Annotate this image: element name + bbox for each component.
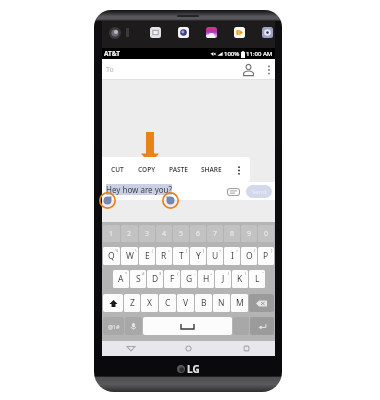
button[interactable]: PASTE [169, 165, 188, 174]
staticText: 3 [145, 229, 150, 239]
button[interactable]: 9 [241, 225, 257, 242]
staticText: | [151, 248, 154, 253]
button[interactable]: 0 [258, 225, 274, 242]
staticText: C [165, 297, 171, 309]
staticText: E [145, 250, 150, 262]
staticText: 8 [230, 229, 235, 239]
staticText: $ [159, 271, 162, 276]
button[interactable]: Camera [178, 27, 189, 38]
button[interactable]: Q [103, 247, 120, 265]
button[interactable]: 2 [121, 225, 138, 242]
button[interactable]: 8 [224, 225, 240, 242]
staticText: 2 [127, 229, 132, 239]
button[interactable]: I [224, 247, 240, 265]
staticText: > [236, 248, 239, 253]
staticText: U [212, 250, 219, 262]
staticText: ] [203, 248, 205, 253]
button[interactable]: N [213, 294, 230, 312]
button[interactable]: P [258, 247, 274, 265]
button[interactable]: F [164, 270, 180, 288]
button[interactable]: Gallery [150, 27, 161, 38]
staticText: PASTE [169, 165, 188, 174]
staticText: SHARE [201, 165, 222, 174]
button[interactable]: CUT [111, 165, 124, 174]
button[interactable]: More options [264, 63, 273, 77]
staticText: N [218, 297, 225, 309]
staticText: ( [228, 271, 230, 276]
button[interactable]: U [207, 247, 223, 265]
button[interactable]: L [249, 270, 265, 288]
button[interactable]: Space [143, 317, 232, 335]
staticText: W [126, 250, 134, 262]
button[interactable]: S [130, 270, 146, 288]
staticText: Send [252, 188, 267, 196]
button[interactable]: H [198, 270, 214, 288]
staticText: LG [187, 362, 200, 376]
button[interactable]: Photos [206, 27, 217, 38]
button[interactable]: E [139, 247, 155, 265]
staticText: O [246, 250, 253, 262]
button[interactable]: More [235, 162, 243, 178]
staticText: ) [245, 271, 247, 276]
staticText: < [219, 248, 222, 253]
staticText: " [262, 271, 264, 276]
staticText: * [125, 271, 128, 276]
button[interactable]: Back [102, 341, 159, 356]
staticText: F [170, 273, 175, 285]
staticText: 7 [213, 229, 218, 239]
staticText: B [201, 297, 207, 309]
staticText: Hey how are you? [106, 184, 172, 195]
button[interactable]: Shift [103, 294, 123, 312]
staticText: 5 [179, 229, 184, 239]
button[interactable]: Z [124, 294, 140, 312]
staticText: R [161, 250, 167, 262]
button[interactable]: X [141, 294, 158, 312]
staticText: 11:00 AM [246, 50, 273, 58]
button[interactable]: W [121, 247, 138, 265]
staticText: H [203, 273, 210, 285]
button[interactable]: Home [159, 341, 217, 356]
button[interactable]: To [102, 59, 275, 80]
button[interactable]: SHARE [201, 165, 222, 174]
button[interactable]: 6 [190, 225, 206, 242]
button[interactable]: J [215, 270, 231, 288]
button[interactable]: G [181, 270, 197, 288]
button[interactable]: T [173, 247, 189, 265]
button[interactable]: Voice input [125, 317, 142, 335]
button[interactable]: R [156, 247, 172, 265]
button[interactable]: 4 [156, 225, 172, 242]
staticText: } [271, 248, 273, 253]
button[interactable]: Enter [250, 317, 274, 335]
staticText: P [263, 250, 269, 262]
button[interactable]: Y [190, 247, 206, 265]
button[interactable]: 1 [103, 225, 120, 242]
button[interactable]: 5 [173, 225, 189, 242]
button[interactable]: @1# [103, 317, 124, 335]
button[interactable]: Contacts [241, 63, 255, 77]
button[interactable]: 7 [207, 225, 223, 242]
staticText: 100% [224, 50, 240, 58]
button[interactable]: Recents [217, 341, 275, 356]
button[interactable]: Media [234, 27, 245, 38]
button[interactable]: C [159, 294, 176, 312]
button[interactable]: O [241, 247, 257, 265]
button[interactable]: K [232, 270, 248, 288]
button[interactable]: V [177, 294, 194, 312]
staticText: K [237, 273, 243, 285]
staticText: M [236, 297, 244, 309]
staticText: COPY [138, 165, 156, 174]
staticText: J [222, 273, 225, 285]
button[interactable]: D [147, 270, 163, 288]
button[interactable]: B [195, 294, 212, 312]
button[interactable]: Backspace [249, 294, 274, 312]
staticText: Z [130, 297, 135, 309]
button[interactable]: Send [246, 185, 272, 198]
button[interactable]: M [231, 294, 248, 312]
button[interactable]: COPY [138, 165, 156, 174]
button[interactable]: A [113, 270, 129, 288]
button[interactable]: 3 [139, 225, 155, 242]
staticText: 1 [109, 229, 114, 239]
staticText: # [142, 271, 145, 276]
button[interactable]: Settings [262, 27, 273, 38]
